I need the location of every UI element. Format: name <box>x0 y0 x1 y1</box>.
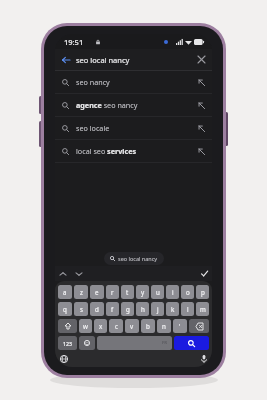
staticText: t <box>126 288 129 296</box>
button[interactable]: agence seo nancy <box>55 94 212 116</box>
staticText: r <box>111 288 114 296</box>
staticText: local seo services <box>76 146 137 156</box>
staticText: q <box>63 305 67 313</box>
staticText: f <box>111 305 114 313</box>
button[interactable]: Search <box>174 336 209 350</box>
staticText: e <box>95 288 99 296</box>
button[interactable]: Insert suggestion <box>191 141 212 162</box>
button[interactable]: o <box>181 285 194 299</box>
button[interactable]: Next field <box>71 266 87 281</box>
staticText: z <box>80 288 83 296</box>
button[interactable]: p <box>196 285 209 299</box>
staticText: d <box>95 305 99 313</box>
button[interactable]: Space <box>97 336 172 350</box>
button[interactable]: Voice input <box>195 350 212 367</box>
button[interactable]: i <box>166 285 179 299</box>
staticText: seo locale <box>76 123 110 133</box>
button[interactable]: z <box>74 285 88 299</box>
button[interactable]: 123 <box>58 336 77 350</box>
staticText: x <box>99 322 103 330</box>
button[interactable]: local seo services <box>55 140 212 162</box>
staticText: 123 <box>63 340 72 347</box>
button[interactable]: Shift <box>58 319 77 333</box>
staticText: s <box>80 305 83 313</box>
staticText: seo local nancy <box>76 55 130 65</box>
staticText: l <box>187 305 189 313</box>
staticText: g <box>126 305 130 313</box>
button[interactable]: seo nancy <box>55 71 212 93</box>
button[interactable]: Done <box>196 266 212 281</box>
staticText: u <box>156 288 160 296</box>
staticText: 19:51 <box>64 37 84 47</box>
button[interactable]: r <box>106 285 119 299</box>
button[interactable]: Insert suggestion <box>191 118 212 139</box>
staticText: b <box>146 322 150 330</box>
button[interactable]: b <box>141 319 155 333</box>
button[interactable]: f <box>106 302 119 316</box>
button[interactable]: e <box>90 285 104 299</box>
button[interactable]: seo local nancy <box>104 252 164 265</box>
staticText: FR <box>162 340 168 346</box>
staticText: p <box>201 288 205 296</box>
staticText: o <box>186 288 190 296</box>
button[interactable]: y <box>136 285 149 299</box>
staticText: h <box>141 305 145 313</box>
button[interactable]: c <box>109 319 123 333</box>
staticText: ' <box>179 322 181 330</box>
button[interactable]: ' <box>173 319 187 333</box>
button[interactable]: a <box>58 285 72 299</box>
button[interactable]: m <box>196 302 209 316</box>
staticText: seo nancy <box>76 77 110 87</box>
button[interactable]: t <box>121 285 134 299</box>
staticText: k <box>171 305 175 313</box>
button[interactable]: Insert suggestion <box>191 72 212 93</box>
button[interactable]: Backspace <box>189 319 209 333</box>
button[interactable]: Back <box>55 49 76 70</box>
button[interactable]: k <box>166 302 179 316</box>
button[interactable]: s <box>74 302 88 316</box>
staticText: seo local nancy <box>118 255 158 262</box>
button[interactable]: v <box>125 319 139 333</box>
button[interactable]: j <box>151 302 164 316</box>
staticText: v <box>130 322 134 330</box>
staticText: c <box>115 322 118 330</box>
staticText: w <box>83 322 88 330</box>
staticText: n <box>162 322 166 330</box>
button[interactable]: h <box>136 302 149 316</box>
button[interactable]: w <box>79 319 92 333</box>
button[interactable]: Clear <box>191 49 212 70</box>
button[interactable]: Emoji <box>79 336 95 350</box>
button[interactable]: l <box>181 302 194 316</box>
button[interactable]: d <box>90 302 104 316</box>
staticText: agence seo nancy <box>76 100 138 110</box>
button[interactable]: x <box>94 319 107 333</box>
staticText: y <box>141 288 145 296</box>
staticText: j <box>157 305 159 313</box>
button[interactable]: seo locale <box>55 117 212 139</box>
button[interactable]: Previous field <box>55 266 71 281</box>
button[interactable]: g <box>121 302 134 316</box>
button[interactable]: Change keyboard language <box>55 350 72 367</box>
staticText: a <box>63 288 67 296</box>
staticText: m <box>200 305 206 313</box>
button[interactable]: Insert suggestion <box>191 95 212 116</box>
button[interactable]: u <box>151 285 164 299</box>
button[interactable]: q <box>58 302 72 316</box>
button[interactable]: n <box>157 319 171 333</box>
staticText: i <box>172 288 174 296</box>
